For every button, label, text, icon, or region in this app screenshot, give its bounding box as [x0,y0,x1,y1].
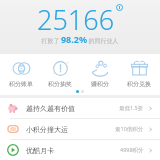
staticText: 优酷月卡 [26,146,54,155]
staticText: 打败了 98.2% 的同行业人 [41,33,119,45]
staticText: 积分兑换 [127,80,151,88]
button[interactable]: 越持久越有价值 [0,98,160,118]
button[interactable]: 积分兑换 [120,58,158,89]
button[interactable]: 积分抽奖 [41,58,79,89]
button[interactable]: 小积分撞大运 [0,119,160,139]
staticText: 积分账单 [9,80,33,88]
staticText: 最低1.5折 [119,104,144,112]
button[interactable]: 赚积分 [81,58,119,89]
staticText: 25166 [37,1,115,38]
staticText: 越持久越有价值 [26,104,75,113]
button[interactable]: Info [116,4,123,11]
button[interactable]: 优酷月卡 [0,140,160,160]
staticText: 4998积分 [120,146,144,154]
button[interactable]: 积分账单 [2,58,40,89]
staticText: 赚积分 [91,80,109,88]
staticText: 积分抽奖 [48,80,72,88]
staticText: 小积分撞大运 [26,125,68,134]
staticText: 最10倍积分 [115,125,144,133]
